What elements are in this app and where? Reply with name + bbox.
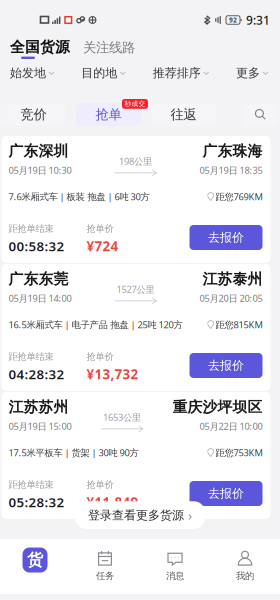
staticText: 更多 bbox=[236, 66, 260, 80]
staticText: ¥13,732 bbox=[86, 365, 138, 383]
button[interactable]: 始发地 bbox=[10, 66, 54, 80]
staticText: 登录查看更多货源 bbox=[88, 508, 184, 522]
staticText: 重庆沙坪坝区 bbox=[172, 398, 262, 416]
staticText: ¥11,849 bbox=[86, 493, 138, 511]
staticText: 05:28:32 bbox=[8, 493, 64, 511]
button[interactable]: 竞价 bbox=[1, 103, 66, 126]
staticText: 距您815KM bbox=[215, 318, 262, 331]
staticText: 抢单 bbox=[95, 106, 121, 123]
staticText: 广东珠海 bbox=[202, 142, 262, 160]
button[interactable]: 货源 bbox=[0, 545, 70, 587]
staticText: 抢单价 bbox=[86, 479, 113, 490]
staticText: 1527公里 bbox=[116, 283, 154, 295]
button[interactable]: 搜索 bbox=[244, 103, 277, 126]
staticText: 关注线路 bbox=[83, 39, 135, 56]
staticText: 货 bbox=[27, 550, 43, 570]
staticText: 往返 bbox=[170, 106, 196, 123]
staticText: 推荐排序 bbox=[153, 66, 201, 80]
button[interactable]: 往返 bbox=[151, 103, 216, 126]
button[interactable]: 消息 bbox=[140, 545, 210, 587]
staticText: 全国货源 bbox=[10, 38, 70, 56]
staticText: ¥724 bbox=[86, 237, 118, 255]
button[interactable]: 更多 bbox=[236, 66, 268, 80]
button[interactable]: 推荐排序 bbox=[153, 66, 209, 80]
button[interactable]: 去报价 bbox=[189, 225, 262, 255]
staticText: 距您769KM bbox=[215, 190, 262, 203]
button[interactable]: 去报价 bbox=[189, 481, 262, 511]
staticText: 1653公里 bbox=[103, 411, 141, 423]
staticText: 05月19日 18:35 bbox=[199, 164, 262, 176]
staticText: 05月22日 10:00 bbox=[199, 420, 262, 432]
staticText: › bbox=[188, 506, 192, 524]
staticText: 江苏苏州 bbox=[8, 398, 68, 416]
staticText: 抢单价 bbox=[86, 351, 113, 362]
staticText: 05月20日 20:05 bbox=[199, 292, 262, 304]
button[interactable]: 登录查看更多货源 bbox=[75, 501, 205, 529]
staticText: 始发地 bbox=[10, 66, 46, 80]
staticText: 92 bbox=[229, 16, 237, 24]
staticText: 距抢单结束 bbox=[8, 351, 53, 362]
staticText: 广东深圳 bbox=[8, 142, 68, 160]
staticText: 距抢单结束 bbox=[8, 479, 53, 490]
button[interactable]: 目的地 bbox=[81, 66, 125, 80]
staticText: 16.5米厢式车 | 电子产品 拖盘 | 25吨 120方 bbox=[8, 318, 182, 331]
button[interactable]: 我的 bbox=[210, 545, 280, 587]
staticText: 消息 bbox=[166, 570, 184, 582]
button[interactable]: 任务 bbox=[70, 545, 140, 587]
button[interactable]: 去报价 bbox=[189, 353, 262, 383]
staticText: 距抢单结束 bbox=[8, 223, 53, 234]
staticText: 去报价 bbox=[208, 486, 244, 501]
staticText: 距您753KM bbox=[215, 446, 262, 459]
staticText: 17.5米平板车 | 货架 | 30吨 90方 bbox=[8, 446, 138, 459]
staticText: 去报价 bbox=[208, 358, 244, 373]
staticText: 我的 bbox=[236, 570, 254, 582]
button[interactable]: 关注线路 bbox=[83, 39, 135, 56]
staticText: 7.6米厢式车 | 板装 拖盘 | 6吨 30方 bbox=[8, 190, 149, 203]
staticText: 05月19日 15:00 bbox=[8, 420, 71, 432]
staticText: 任务 bbox=[96, 570, 114, 582]
staticText: 抢单价 bbox=[86, 223, 113, 234]
staticText: 00:58:32 bbox=[8, 237, 64, 255]
button[interactable]: 抢单 bbox=[76, 103, 141, 126]
staticText: 目的地 bbox=[81, 66, 117, 80]
staticText: 去报价 bbox=[208, 230, 244, 245]
staticText: 05月19日 14:00 bbox=[8, 292, 71, 304]
staticText: 广东东莞 bbox=[8, 270, 68, 288]
staticText: 198公里 bbox=[119, 155, 152, 167]
staticText: 9:31 bbox=[246, 12, 270, 28]
staticText: 秒成交 bbox=[124, 100, 145, 108]
staticText: 竞价 bbox=[20, 106, 46, 123]
staticText: 05月19日 10:30 bbox=[8, 164, 71, 176]
button[interactable]: 全国货源 bbox=[10, 38, 70, 56]
staticText: 04:28:32 bbox=[8, 365, 64, 383]
staticText: 江苏泰州 bbox=[202, 270, 262, 288]
